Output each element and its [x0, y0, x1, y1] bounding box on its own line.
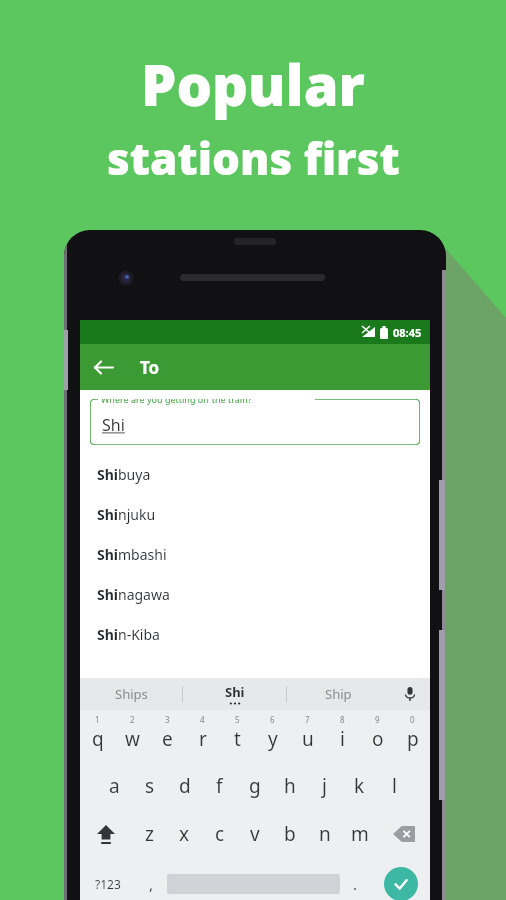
button[interactable]: m	[342, 810, 377, 858]
button[interactable]: 5	[220, 710, 255, 762]
staticText: r	[199, 726, 207, 752]
staticText: w	[125, 726, 140, 752]
button[interactable]: Ships	[80, 678, 182, 710]
button[interactable]: 7	[290, 710, 325, 762]
staticText: k	[354, 773, 365, 799]
button[interactable]: h	[272, 762, 307, 810]
staticText: 4	[200, 714, 205, 725]
staticText: 8	[340, 714, 345, 725]
button[interactable]: x	[167, 810, 202, 858]
button[interactable]: Where are you getting off the train?	[90, 399, 420, 445]
staticText: x	[179, 821, 190, 847]
staticText: Ship	[325, 685, 352, 703]
staticText: c	[215, 821, 225, 847]
staticText: To	[140, 356, 160, 379]
staticText: ,	[149, 874, 154, 894]
button[interactable]: j	[307, 762, 342, 810]
staticText: .	[353, 874, 358, 894]
button[interactable]: g	[237, 762, 272, 810]
staticText: y	[268, 726, 278, 752]
button[interactable]: Shift	[80, 810, 132, 858]
staticText: n	[319, 821, 331, 847]
staticText: q	[92, 726, 104, 752]
button[interactable]: k	[342, 762, 377, 810]
button[interactable]: 3	[150, 710, 185, 762]
button[interactable]: Shinjuku	[80, 494, 430, 534]
button[interactable]: d	[167, 762, 202, 810]
button[interactable]: c	[202, 810, 237, 858]
staticText: t	[234, 726, 241, 752]
staticText: s	[145, 773, 155, 799]
staticText: 3	[165, 714, 170, 725]
staticText: Shinagawa	[97, 585, 170, 604]
staticText: 2	[130, 714, 135, 725]
staticText: Shin-Kiba	[97, 625, 160, 644]
button[interactable]: ,	[136, 858, 167, 900]
staticText: 6	[270, 714, 275, 725]
staticText: j	[322, 773, 327, 799]
button[interactable]: Shimbashi	[80, 534, 430, 574]
button[interactable]: 9	[360, 710, 395, 762]
staticText: Shinjuku	[97, 505, 156, 524]
button[interactable]: Voice input	[390, 678, 430, 710]
button[interactable]: z	[132, 810, 167, 858]
button[interactable]: Shi	[183, 678, 286, 710]
button[interactable]: 4	[185, 710, 220, 762]
staticText: 1	[95, 714, 100, 725]
staticText: 5	[235, 714, 240, 725]
staticText: h	[284, 773, 296, 799]
button[interactable]: Shibuya	[80, 454, 430, 494]
staticText: Shi	[102, 414, 125, 436]
button[interactable]: Shin-Kiba	[80, 614, 430, 654]
staticText: b	[284, 821, 296, 847]
staticText: i	[340, 726, 345, 752]
staticText: ?123	[95, 876, 121, 892]
staticText: g	[249, 773, 261, 799]
button[interactable]: 2	[115, 710, 150, 762]
staticText: d	[179, 773, 191, 799]
button[interactable]: 6	[255, 710, 290, 762]
button[interactable]: .	[340, 858, 371, 900]
button[interactable]: Backspace	[377, 810, 430, 858]
button[interactable]: 1	[80, 710, 115, 762]
button[interactable]: n	[307, 810, 342, 858]
staticText: e	[162, 726, 173, 752]
staticText: 0	[410, 714, 415, 725]
staticText: p	[407, 726, 419, 752]
staticText: Shibuya	[97, 465, 151, 484]
staticText: u	[302, 726, 314, 752]
button[interactable]: l	[377, 762, 412, 810]
button[interactable]: ?123	[80, 858, 136, 900]
staticText: v	[250, 821, 260, 847]
staticText: l	[392, 773, 397, 799]
staticText: Shimbashi	[97, 545, 167, 564]
staticText: 9	[375, 714, 380, 725]
staticText: f	[216, 773, 223, 799]
staticText: a	[109, 773, 120, 799]
button[interactable]: b	[272, 810, 307, 858]
button[interactable]: 0	[395, 710, 430, 762]
button[interactable]: Back	[80, 344, 126, 390]
staticText: m	[351, 821, 369, 847]
staticText: 08:45	[393, 325, 422, 340]
staticText: Shi	[225, 683, 245, 701]
button[interactable]: v	[237, 810, 272, 858]
staticText: 7	[305, 714, 310, 725]
button[interactable]: Shinagawa	[80, 574, 430, 614]
staticText: Popular	[141, 46, 365, 122]
staticText: o	[372, 726, 384, 752]
button[interactable]: a	[97, 762, 132, 810]
button[interactable]: Done	[384, 867, 418, 900]
staticText: z	[145, 821, 154, 847]
staticText: Where are you getting off the train?	[101, 399, 252, 405]
button[interactable]: f	[202, 762, 237, 810]
button[interactable]: s	[132, 762, 167, 810]
staticText: Ships	[115, 685, 148, 703]
button[interactable]: Ship	[287, 678, 390, 710]
staticText: stations first	[107, 128, 400, 188]
button[interactable]: 8	[325, 710, 360, 762]
